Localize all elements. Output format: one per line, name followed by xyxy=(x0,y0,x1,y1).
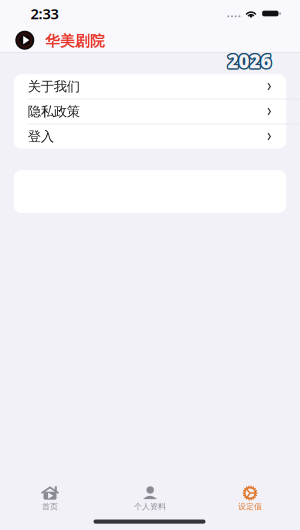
staticText: 设定值 xyxy=(238,502,262,511)
button[interactable]: 设定值 xyxy=(200,481,300,529)
staticText: 2026 xyxy=(227,50,271,75)
staticText: 2:33 xyxy=(30,4,58,23)
staticText: 2026 xyxy=(229,49,273,73)
staticText: 2026 xyxy=(227,49,271,74)
staticText: 2026 xyxy=(228,49,272,74)
staticText: 华美剧院 xyxy=(45,32,105,50)
button[interactable]: 关于我们 xyxy=(14,74,286,99)
staticText: 首页 xyxy=(42,502,58,511)
staticText: 2026 xyxy=(227,48,271,72)
staticText: 2026 xyxy=(228,48,272,72)
staticText: 个人资料 xyxy=(134,502,166,511)
staticText: 2026 xyxy=(227,49,271,73)
button[interactable]: 个人资料 xyxy=(100,481,200,529)
button[interactable]: 首页 xyxy=(0,481,100,529)
staticText: 登入 xyxy=(28,128,54,145)
button[interactable]: 隐私政策 xyxy=(14,99,286,124)
staticText: 2026 xyxy=(226,49,270,73)
staticText: 2026 xyxy=(227,47,271,72)
button[interactable]: 登入 xyxy=(14,124,286,149)
staticText: 隐私政策 xyxy=(28,103,80,120)
staticText: 关于我们 xyxy=(28,78,80,95)
